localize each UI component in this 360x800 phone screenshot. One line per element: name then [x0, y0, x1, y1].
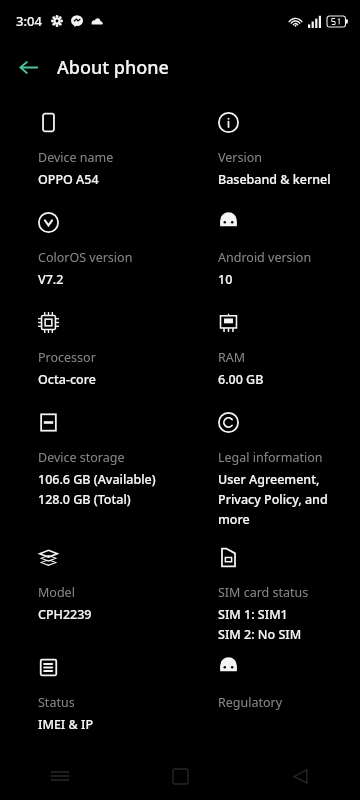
button[interactable]: Status	[0, 647, 180, 747]
button[interactable]: Recent apps	[0, 752, 120, 800]
staticText: 3:04	[16, 12, 42, 30]
button[interactable]: Device storage	[0, 402, 180, 537]
staticText: 6.00 GB	[218, 371, 264, 388]
staticText: Model	[38, 584, 75, 601]
staticText: CPH2239	[38, 606, 92, 623]
staticText: 106.6 GB (Available)	[38, 471, 156, 488]
staticText: more	[218, 511, 250, 528]
staticText: SIM card status	[218, 584, 309, 601]
staticText: OPPO A54	[38, 171, 99, 188]
staticText: Android version	[218, 249, 312, 266]
button[interactable]: Model	[0, 537, 180, 647]
button[interactable]: Android version	[180, 202, 360, 302]
staticText: Legal information	[218, 449, 323, 466]
staticText: 10	[218, 271, 233, 288]
staticText: Privacy Policy, and	[218, 491, 328, 508]
staticText: RAM	[218, 349, 246, 366]
staticText: SIM 1: SIM1	[218, 606, 288, 623]
button[interactable]: RAM	[180, 302, 360, 402]
button[interactable]: Legal information	[180, 402, 360, 537]
button[interactable]: Processor	[0, 302, 180, 402]
staticText: Processor	[38, 349, 96, 366]
staticText: SIM 2: No SIM	[218, 626, 302, 643]
button[interactable]: Back	[240, 752, 360, 800]
button[interactable]: ColorOS version	[0, 202, 180, 302]
staticText: ColorOS version	[38, 249, 133, 266]
staticText: Device storage	[38, 449, 125, 466]
staticText: V7.2	[38, 271, 64, 288]
staticText: Regulatory	[218, 694, 283, 711]
button[interactable]: SIM card status	[180, 537, 360, 647]
staticText: Version	[218, 149, 262, 166]
staticText: Status	[38, 694, 75, 711]
staticText: About phone	[57, 55, 169, 80]
button[interactable]: Home	[120, 752, 240, 800]
staticText: IMEI & IP	[38, 716, 94, 733]
button[interactable]: Navigate up	[8, 47, 48, 87]
staticText: Device name	[38, 149, 114, 166]
staticText: 128.0 GB (Total)	[38, 491, 131, 508]
staticText: Baseband & kernel	[218, 171, 331, 188]
staticText: User Agreement,	[218, 471, 320, 488]
button[interactable]: Version	[180, 102, 360, 202]
button[interactable]: Regulatory	[180, 647, 360, 747]
staticText: Octa-core	[38, 371, 96, 388]
button[interactable]: Device name	[0, 102, 180, 202]
